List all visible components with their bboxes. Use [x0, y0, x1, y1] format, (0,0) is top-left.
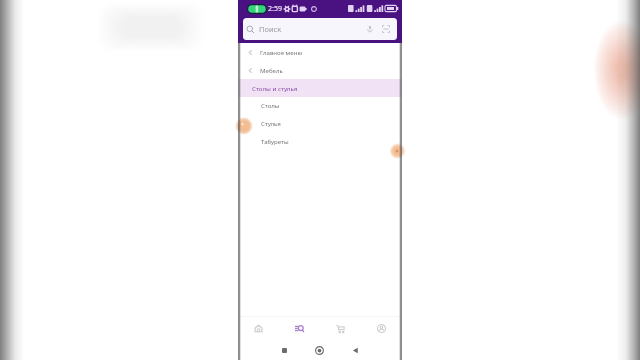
staticText: 2:59: [268, 4, 282, 14]
button[interactable]: Поиск: [243, 18, 397, 40]
other: Scan: [382, 25, 390, 33]
button[interactable]: Profile: [361, 317, 402, 343]
button[interactable]: Home: [311, 342, 327, 358]
staticText: Столы: [261, 101, 280, 109]
other: Voice search: [366, 25, 374, 33]
button[interactable]: Табуреты: [238, 132, 402, 150]
button[interactable]: Home: [238, 317, 279, 343]
button[interactable]: Back: [347, 342, 363, 358]
button[interactable]: Столы и стулья: [238, 79, 402, 97]
staticText: Стулья: [261, 119, 281, 127]
button[interactable]: Cart: [320, 317, 361, 343]
button[interactable]: Мебель: [238, 61, 402, 79]
staticText: Мебель: [260, 66, 283, 74]
button[interactable]: Стулья: [238, 114, 402, 132]
button[interactable]: Главное меню: [238, 43, 402, 61]
button[interactable]: Столы: [238, 96, 402, 114]
staticText: Столы и стулья: [252, 84, 298, 92]
staticText: Поиск: [259, 24, 282, 34]
staticText: Табуреты: [261, 137, 289, 145]
button[interactable]: Recents: [276, 342, 292, 358]
button[interactable]: Catalog: [279, 317, 320, 343]
staticText: Главное меню: [260, 48, 303, 56]
